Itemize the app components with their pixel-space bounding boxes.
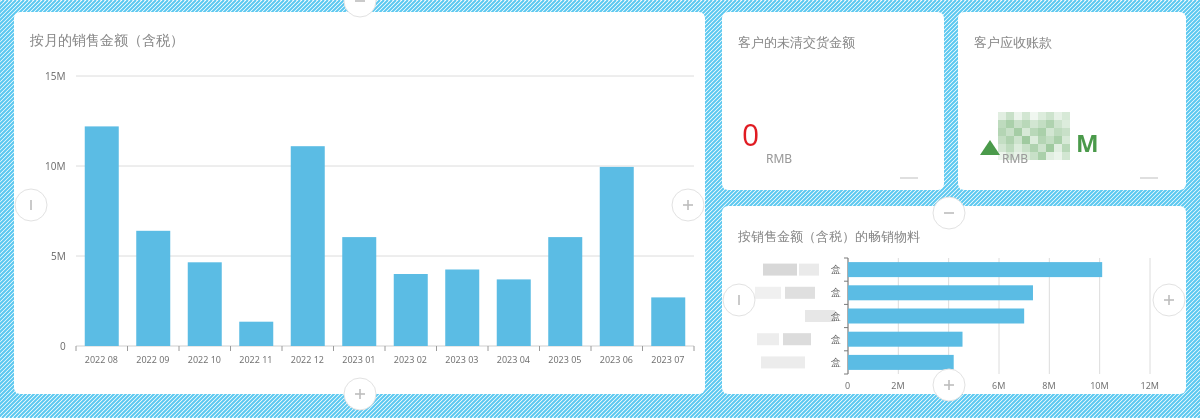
button[interactable]: Collapse — [343, 0, 377, 18]
button[interactable]: Add below — [343, 377, 377, 411]
button[interactable]: Add below — [932, 368, 966, 402]
button[interactable]: Resize — [722, 283, 756, 317]
button[interactable] — [14, 12, 705, 394]
button[interactable]: Resize left — [14, 188, 48, 222]
button[interactable] — [958, 12, 1186, 190]
button[interactable] — [722, 206, 1186, 394]
button[interactable]: Add right — [671, 188, 705, 222]
button[interactable]: Collapse — [932, 196, 966, 230]
button[interactable] — [722, 12, 944, 190]
button[interactable]: Add right — [1152, 283, 1186, 317]
